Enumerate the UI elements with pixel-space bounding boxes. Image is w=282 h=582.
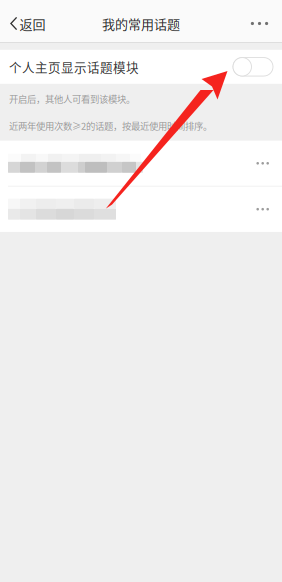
button[interactable]: More options xyxy=(237,5,282,42)
staticText: 返回 xyxy=(19,14,45,33)
button[interactable] xyxy=(0,141,282,186)
staticText: 开启后，其他人可看到该模块。 xyxy=(9,92,135,105)
staticText: 个人主页显示话题模块 xyxy=(9,58,139,76)
staticText: 近两年使用次数≥2的话题，按最近使用时间排序。 xyxy=(9,119,212,132)
button[interactable]: 返回 xyxy=(0,5,53,42)
staticText: 我的常用话题 xyxy=(102,14,180,33)
button[interactable] xyxy=(0,187,282,232)
button[interactable]: 个人主页显示话题模块 xyxy=(0,50,282,84)
